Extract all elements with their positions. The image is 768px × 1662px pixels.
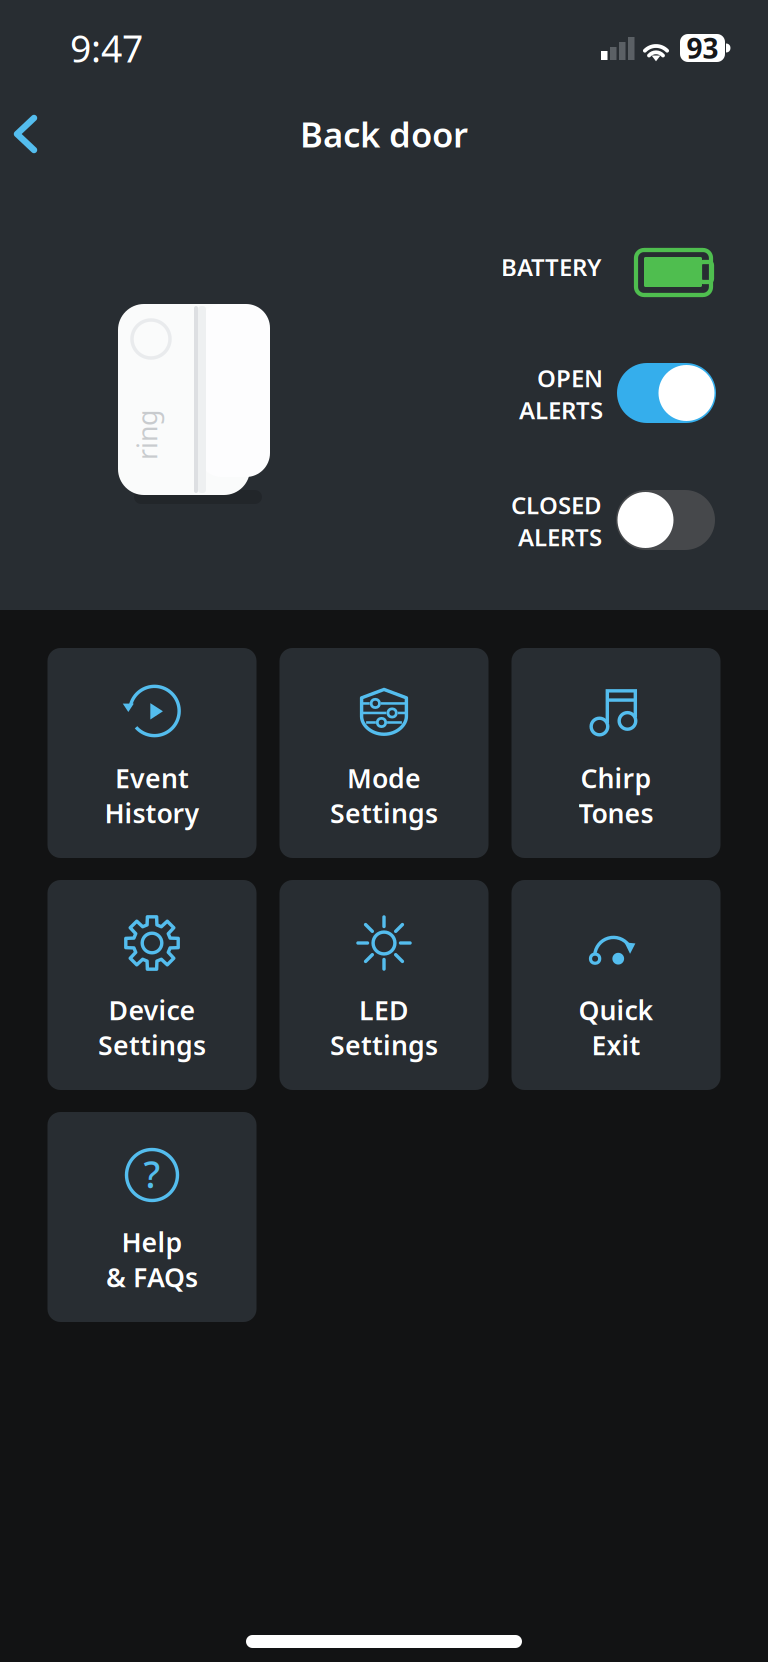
staticText: Settings (330, 1027, 438, 1063)
staticText: Exit (591, 1027, 640, 1063)
staticText: ring (122, 417, 172, 453)
staticText: Chirp (580, 760, 651, 796)
staticText: ALERTS (519, 394, 603, 426)
staticText: CLOSED (511, 489, 602, 521)
staticText: 9:47 (70, 23, 143, 73)
staticText: ALERTS (518, 521, 602, 553)
button[interactable]: Chirp (511, 648, 720, 858)
staticText: Event (115, 760, 189, 796)
staticText: Back door (300, 111, 468, 157)
staticText: Quick (578, 992, 653, 1028)
button[interactable]: Quick (511, 880, 720, 1090)
button[interactable]: OPEN (511, 366, 721, 428)
staticText: ? (143, 1149, 160, 1199)
staticText: & FAQs (106, 1259, 198, 1295)
staticText: Mode (347, 760, 421, 796)
staticText: History (104, 795, 199, 831)
button[interactable]: Event (47, 648, 256, 858)
button[interactable]: CLOSED (506, 493, 720, 555)
staticText: LED (359, 992, 409, 1028)
staticText: Tones (578, 795, 653, 831)
staticText: Help (121, 1224, 182, 1260)
button[interactable]: LED (279, 880, 488, 1090)
staticText: 93 (686, 29, 718, 67)
button[interactable]: Mode (279, 648, 488, 858)
staticText: Device (108, 992, 195, 1028)
staticText: Settings (330, 795, 438, 831)
button[interactable]: Back (8, 108, 62, 160)
staticText: BATTERY (501, 251, 601, 283)
staticText: Settings (98, 1027, 206, 1063)
button[interactable]: Device (47, 880, 256, 1090)
button[interactable]: ? (47, 1112, 256, 1322)
staticText: OPEN (537, 362, 603, 394)
